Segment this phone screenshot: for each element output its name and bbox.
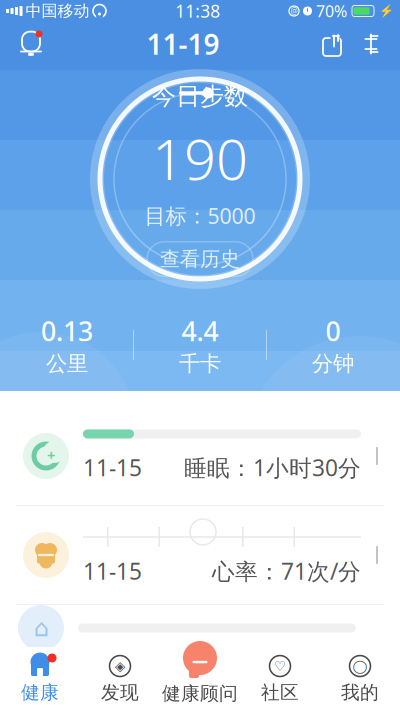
staticText: 查看历史 (160, 247, 240, 271)
staticText: ⌂ (33, 614, 48, 642)
staticText: 心率：71次/分 (212, 556, 361, 586)
staticText: 4.4 (181, 313, 218, 349)
staticText: 0 (325, 313, 340, 349)
staticText: 11:38 (175, 0, 220, 22)
button[interactable]: Bluetooth (352, 22, 390, 66)
button[interactable]: + (0, 407, 400, 505)
button[interactable]: 健康顾问 (160, 650, 240, 708)
staticText: 睡眠：1小时30分 (184, 452, 361, 482)
staticText: ◈ (115, 658, 125, 674)
staticText: 我的 (341, 681, 379, 704)
staticText: 11-19 (146, 25, 219, 63)
staticText: ◯ (352, 658, 367, 674)
staticText: 健康 (21, 681, 59, 704)
staticText: 11-15 (83, 556, 142, 586)
staticText: ♡ (274, 658, 286, 674)
staticText: 70% (316, 0, 347, 22)
staticText: 目标：5000 (144, 201, 255, 230)
staticText: 190 (152, 121, 248, 195)
button[interactable]: 查看历史 (147, 242, 253, 276)
staticText: 千卡 (179, 351, 221, 377)
staticText: 健康顾问 (162, 682, 238, 705)
staticText: 分钟 (312, 351, 354, 377)
button[interactable]: Notifications (8, 22, 54, 66)
button[interactable]: ◯ (320, 650, 400, 708)
button[interactable]: 11-15 (0, 506, 400, 604)
staticText: 中国移动 (25, 1, 89, 21)
staticText: 11-15 (83, 452, 142, 482)
button[interactable]: ◈ (80, 650, 160, 708)
staticText: 发现 (101, 681, 139, 704)
staticText: @ (290, 6, 297, 16)
staticText: 社区 (261, 681, 299, 704)
staticText: 今日步数 (152, 82, 248, 111)
staticText: ⚡ (379, 4, 394, 18)
button[interactable]: 健康 (0, 650, 80, 708)
button[interactable]: Share (312, 22, 352, 66)
staticText: 公里 (46, 351, 88, 377)
staticText: 0.13 (41, 313, 93, 349)
button[interactable]: ♡ (240, 650, 320, 708)
button[interactable]: ⌂ (0, 605, 400, 665)
staticText: + (47, 445, 55, 465)
